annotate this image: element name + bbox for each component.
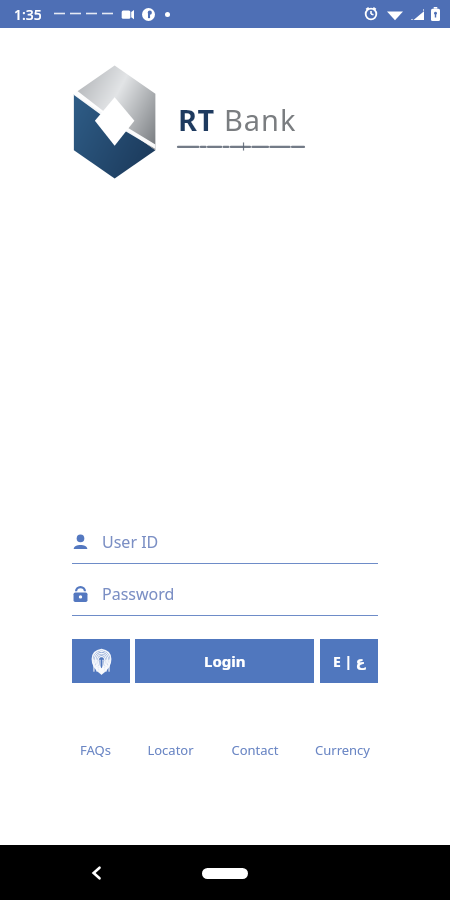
staticText: User ID xyxy=(102,531,159,553)
staticText: 1:35 xyxy=(14,5,42,24)
button[interactable]: FAQs xyxy=(78,737,113,763)
staticText: Locator xyxy=(147,741,194,759)
button[interactable]: Password xyxy=(72,579,378,609)
button[interactable]: Contact xyxy=(229,737,281,763)
staticText: RT xyxy=(178,100,215,139)
staticText: Bank xyxy=(224,100,297,139)
staticText: FAQs xyxy=(80,741,111,759)
button[interactable]: Switch language English Arabic xyxy=(320,639,378,683)
button[interactable]: User ID xyxy=(72,527,378,557)
staticText: Login xyxy=(204,651,246,671)
staticText: Contact xyxy=(231,741,279,759)
staticText: Currency xyxy=(315,741,370,759)
button[interactable]: Locator xyxy=(145,737,196,763)
button[interactable]: Home xyxy=(195,856,255,890)
staticText: E | ع xyxy=(333,652,366,671)
staticText: Password xyxy=(102,583,175,605)
button[interactable]: Currency xyxy=(313,737,372,763)
button[interactable]: Back xyxy=(80,856,114,890)
button[interactable]: Fingerprint login xyxy=(72,639,130,683)
button[interactable]: Login xyxy=(135,639,314,683)
